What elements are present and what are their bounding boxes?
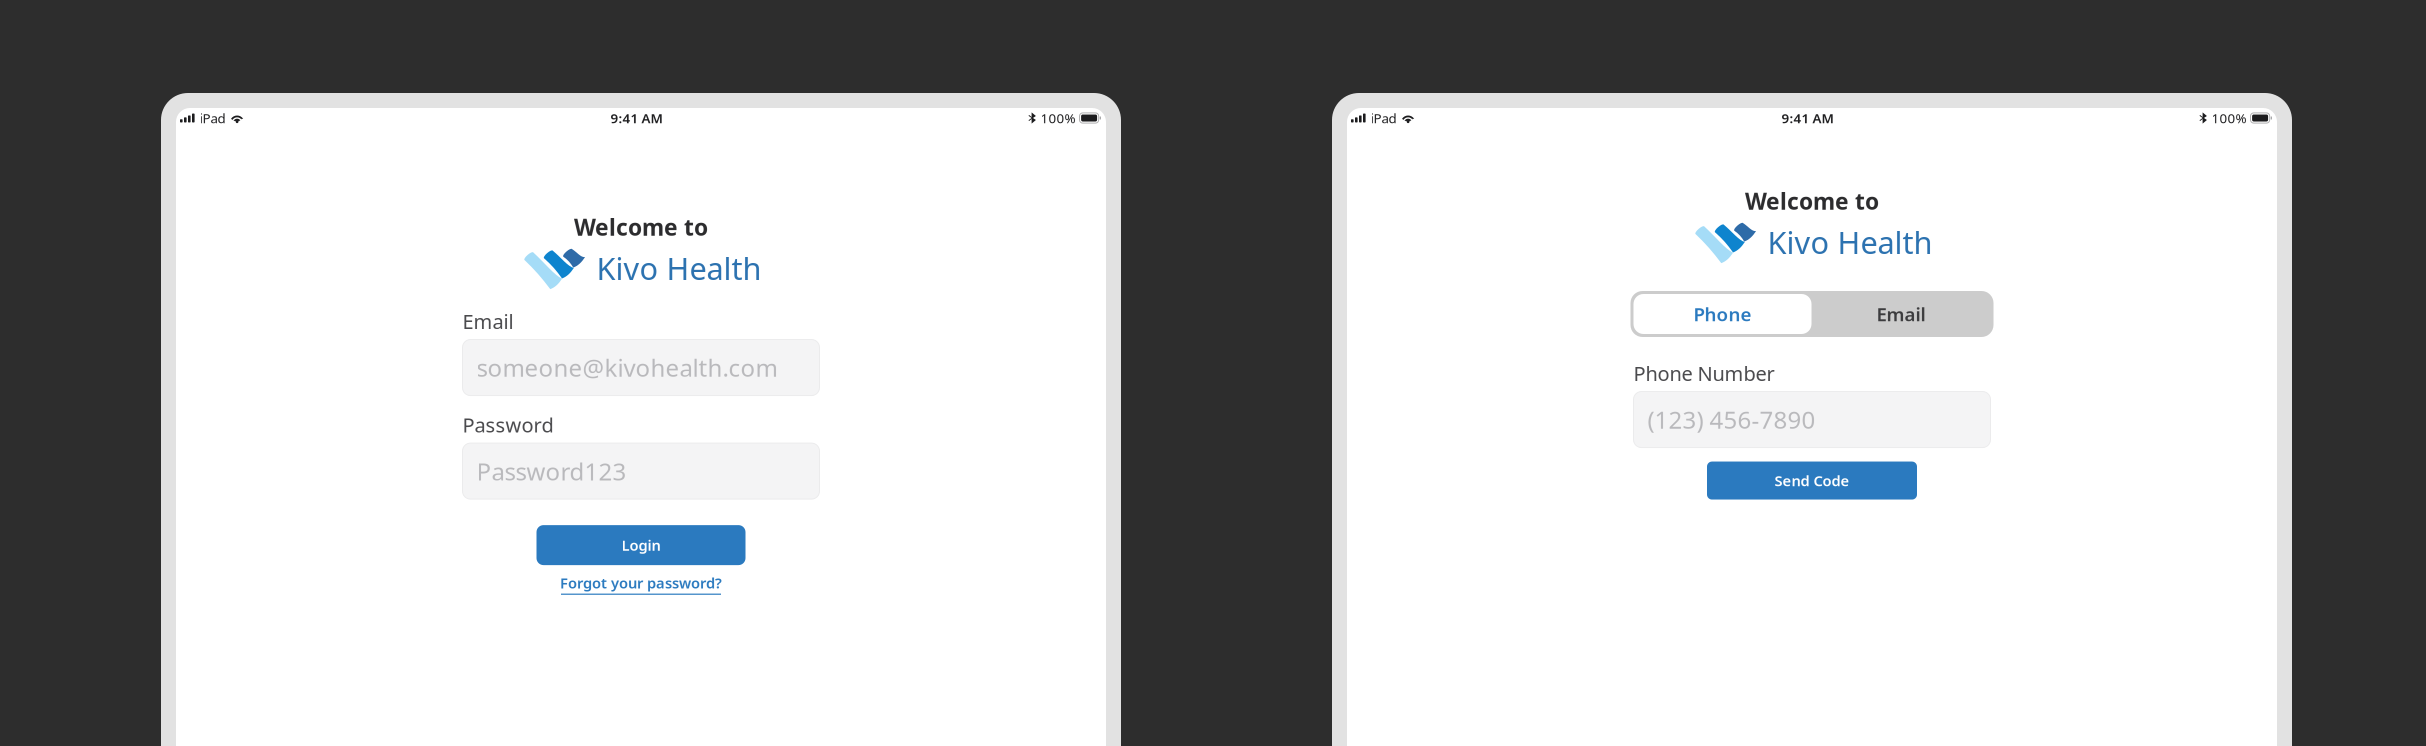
staticText: Forgot your password? <box>560 573 722 593</box>
staticText: Password <box>462 412 553 438</box>
staticText: Kivo Health <box>1767 222 1932 262</box>
staticText: Login <box>621 535 660 555</box>
staticText: Email <box>462 308 513 335</box>
staticText: (123) 456-7890 <box>1647 404 1815 435</box>
staticText: Password123 <box>476 455 626 487</box>
staticText: Phone <box>1693 302 1751 326</box>
button[interactable]: Email <box>1811 294 1990 334</box>
button[interactable]: Send Code <box>1707 462 1917 500</box>
staticText: 9:41 AM <box>1781 109 1833 127</box>
staticText: Kivo Health <box>596 248 761 288</box>
button[interactable]: Forgot your password? <box>560 573 722 595</box>
staticText: 100% <box>2211 109 2246 127</box>
staticText: 100% <box>1040 109 1075 127</box>
staticText: Phone Number <box>1633 360 1774 387</box>
staticText: Send Code <box>1774 471 1849 490</box>
staticText: Welcome to <box>574 212 708 242</box>
staticText: Email <box>1876 302 1925 326</box>
staticText: 9:41 AM <box>610 109 662 127</box>
staticText: Welcome to <box>1745 186 1879 216</box>
button[interactable]: Phone <box>1633 294 1811 334</box>
staticText: iPad <box>1371 109 1397 127</box>
staticText: someone@kivohealth.com <box>476 352 777 383</box>
button[interactable]: Login <box>536 525 745 565</box>
staticText: iPad <box>200 109 226 127</box>
